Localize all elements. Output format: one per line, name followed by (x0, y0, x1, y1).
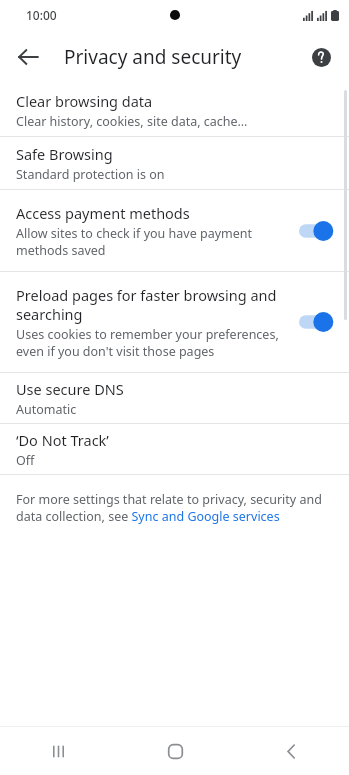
staticText: ‘Do Not Track’ (16, 430, 109, 450)
button[interactable]: Toggle (299, 218, 335, 244)
staticText: Allow sites to check if you have payment… (16, 225, 252, 258)
button[interactable]: Recent apps (0, 727, 117, 775)
button[interactable]: Home (117, 727, 233, 775)
button[interactable]: Back (8, 37, 48, 77)
button[interactable]: ‘Do Not Track’ (0, 424, 349, 474)
staticText: Clear history, cookies, site data, cache… (16, 113, 248, 130)
staticText: Preload pages for faster browsing and se… (16, 285, 277, 324)
button[interactable]: Clear browsing data (0, 84, 349, 136)
button[interactable]: Toggle (299, 309, 335, 335)
button[interactable]: For more settings that relate to privacy… (16, 491, 333, 525)
staticText: Automatic (16, 401, 77, 418)
button[interactable]: Use secure DNS (0, 373, 349, 423)
button[interactable]: Safe Browsing (0, 137, 349, 189)
button[interactable]: Preload pages for faster browsing and se… (0, 272, 349, 372)
staticText: Uses cookies to remember your preference… (16, 326, 279, 359)
button[interactable]: Access payment methods (0, 190, 349, 271)
staticText: Access payment methods (16, 203, 190, 223)
staticText: Clear browsing data (16, 91, 153, 111)
staticText: Safe Browsing (16, 144, 113, 164)
staticText: Use secure DNS (16, 379, 124, 399)
staticText: Privacy and security (64, 44, 242, 70)
button[interactable]: Help (301, 37, 341, 77)
button[interactable]: Back (233, 727, 349, 775)
staticText: Off (16, 452, 35, 469)
staticText: 10:00 (26, 7, 57, 23)
staticText: Standard protection is on (16, 166, 165, 183)
